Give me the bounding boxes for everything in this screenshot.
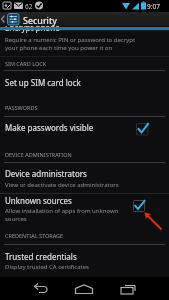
- staticText: CREDENTIAL STORAGE: [5, 232, 64, 239]
- button[interactable]: [0, 246, 169, 274]
- staticText: Trusted credentials: [5, 251, 77, 262]
- staticText: Allow installation of apps from unknown: [5, 207, 119, 215]
- staticText: SIM CARD LOCK: [5, 60, 47, 67]
- button[interactable]: [70, 277, 98, 300]
- button[interactable]: Security: [0, 12, 169, 26]
- staticText: 9:07: [147, 2, 160, 11]
- button[interactable]: [0, 29, 169, 53]
- staticText: Require a numeric PIN or password to dec…: [5, 36, 136, 44]
- button[interactable]: [0, 164, 169, 192]
- staticText: View or deactivate device administrators: [5, 181, 119, 189]
- staticText: Encrypt phone: [5, 22, 60, 33]
- button[interactable]: [114, 277, 142, 300]
- staticText: Make passwords visible: [5, 122, 94, 133]
- button[interactable]: [0, 194, 169, 224]
- staticText: 62: [25, 2, 33, 11]
- staticText: Set up SIM card lock: [5, 77, 81, 88]
- button[interactable]: [0, 118, 169, 138]
- staticText: PASSWORDS: [5, 104, 38, 111]
- staticText: DEVICE ADMINISTRATION: [5, 151, 72, 158]
- staticText: Device administrators: [5, 168, 87, 179]
- staticText: sources: [5, 215, 27, 223]
- staticText: your phone each time you power it on: [5, 44, 113, 52]
- staticText: Display trusted CA certificates: [5, 263, 89, 271]
- button[interactable]: [0, 72, 169, 92]
- staticText: Security: [23, 14, 57, 26]
- staticText: Unknown sources: [5, 195, 72, 206]
- button[interactable]: [28, 277, 56, 300]
